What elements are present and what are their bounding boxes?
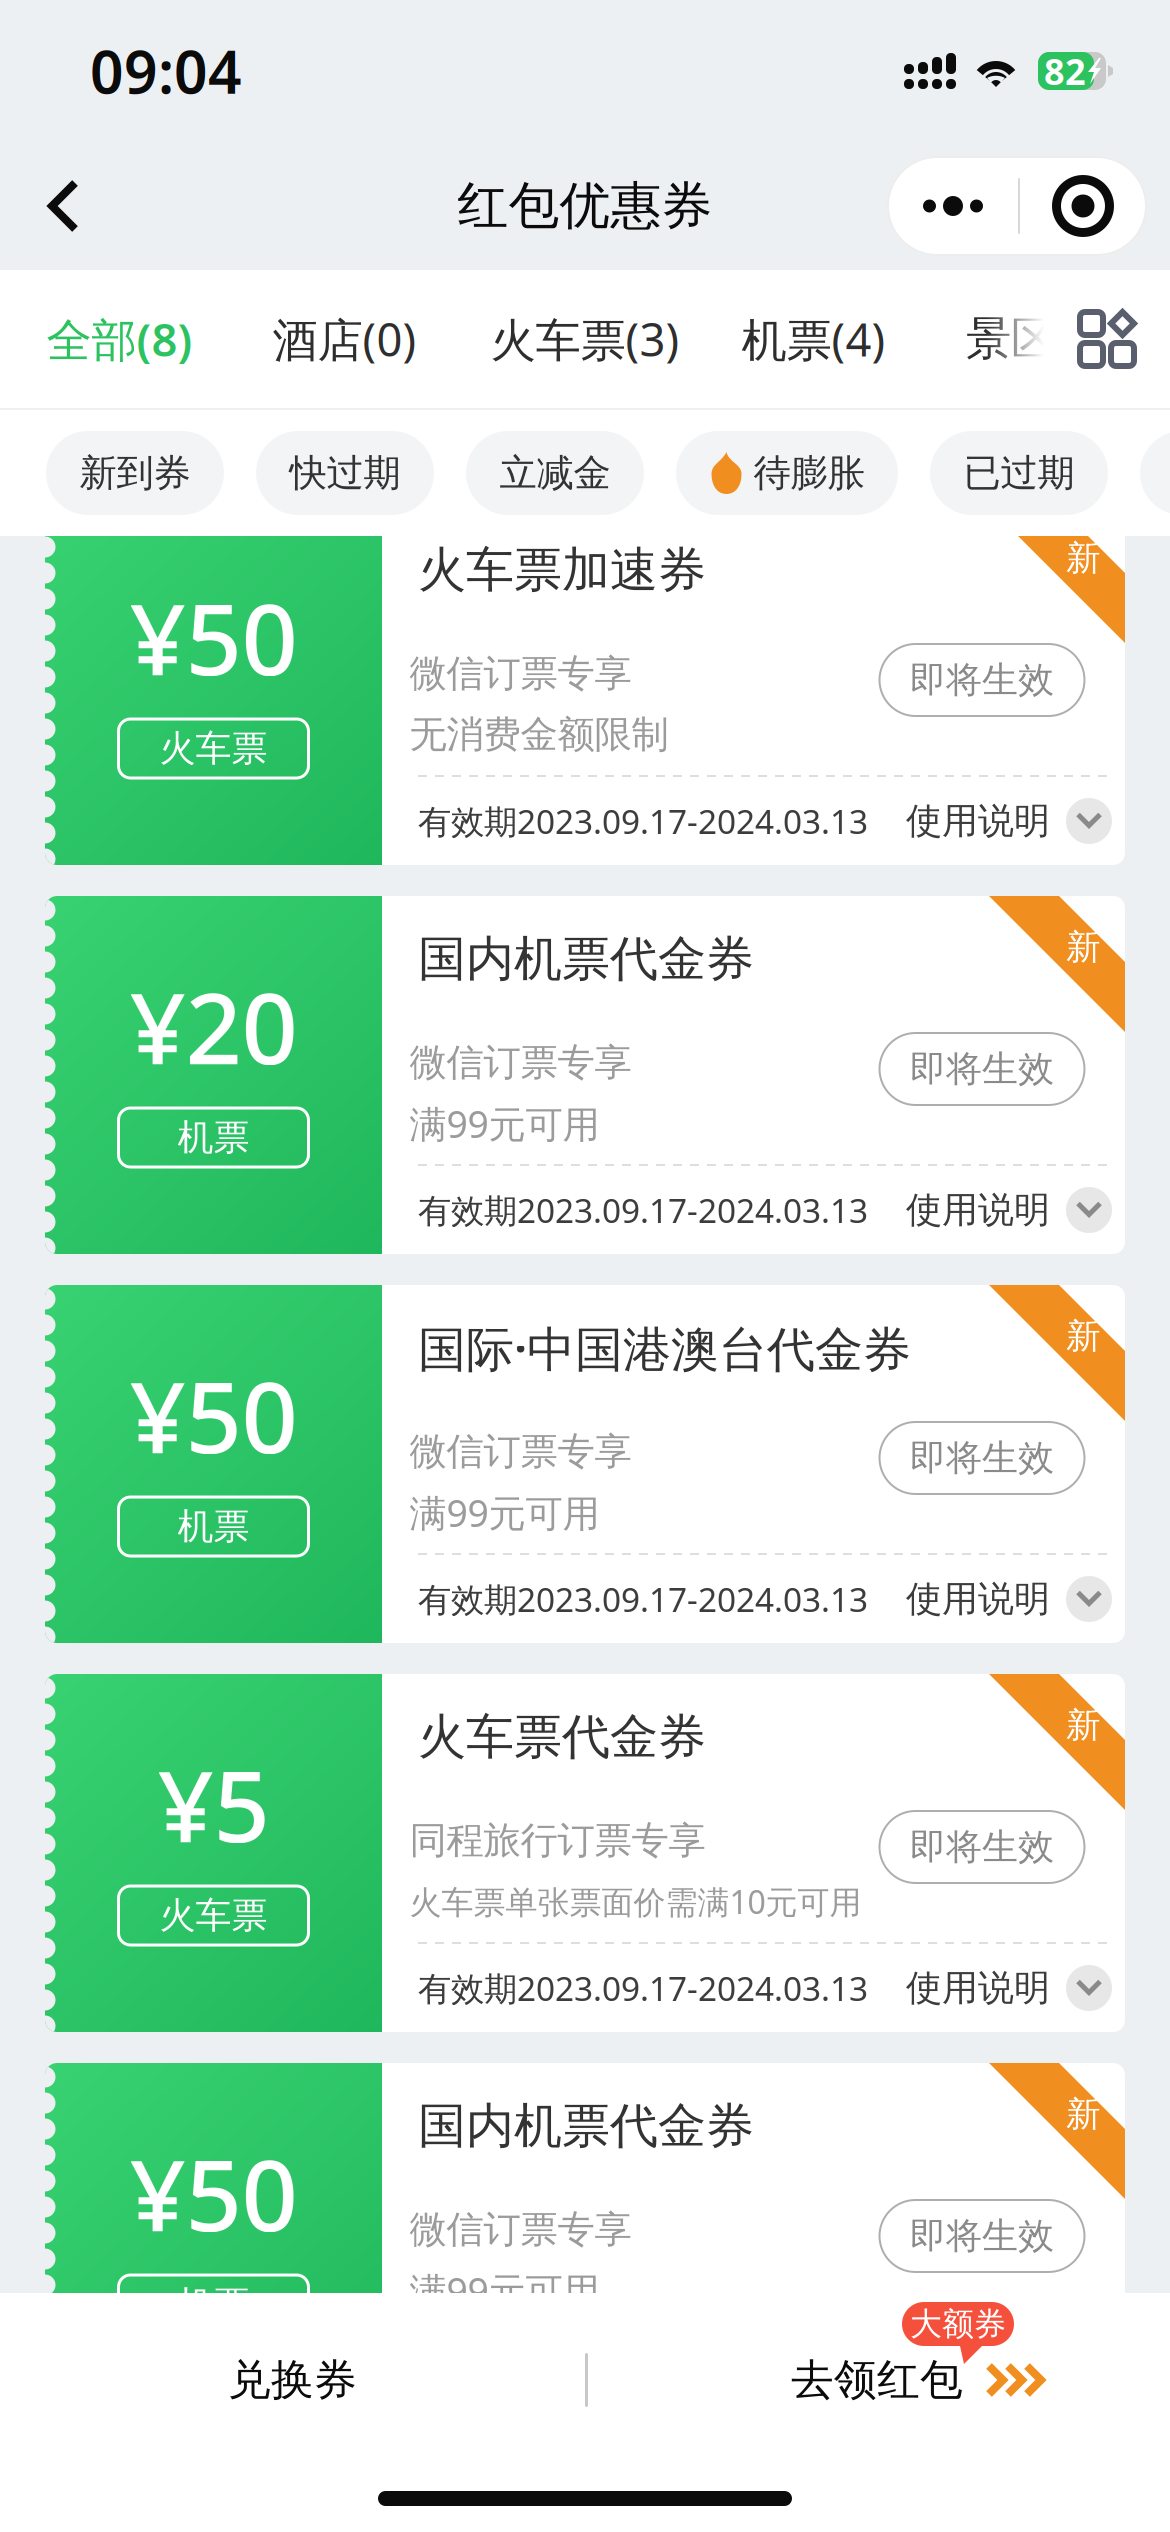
- staticText: 即将生效: [910, 1825, 1054, 1869]
- button[interactable]: 已使用: [1140, 431, 1170, 515]
- button[interactable]: 景区: [951, 270, 1071, 408]
- button[interactable]: 已过期: [930, 431, 1108, 515]
- staticText: 即将生效: [910, 658, 1054, 702]
- button[interactable]: More: [888, 157, 1018, 255]
- button[interactable]: 去领红包: [588, 2293, 1170, 2467]
- staticText: 已过期: [963, 450, 1074, 496]
- button[interactable]: 待膨胀: [676, 431, 898, 515]
- staticText: 微信订票专享: [409, 2207, 631, 2252]
- button[interactable]: All categories: [1044, 270, 1170, 408]
- button[interactable]: 快过期: [256, 431, 434, 515]
- staticText: 使用说明: [906, 1188, 1050, 1232]
- staticText: 微信订票专享: [409, 1429, 631, 1474]
- staticText: 有效期2023.09.17-2024.03.13: [418, 2355, 868, 2399]
- staticText: ¥20: [129, 960, 297, 1091]
- staticText: 满99元可用: [409, 1488, 599, 1537]
- button[interactable]: 火车票(3): [490, 270, 680, 408]
- staticText: 09:04: [90, 32, 242, 110]
- staticText: 火车票代金券: [418, 1707, 706, 1766]
- button[interactable]: Close mini program: [1020, 157, 1146, 255]
- staticText: 新: [1066, 1704, 1101, 1747]
- staticText: 新: [1066, 926, 1101, 969]
- staticText: 全部(8): [46, 309, 192, 369]
- staticText: 酒店(0): [272, 309, 416, 369]
- staticText: 机票: [177, 2282, 249, 2327]
- staticText: 82: [1044, 47, 1086, 95]
- staticText: 火车票单张票面价需满10元可用: [409, 1880, 861, 1923]
- button[interactable]: ¥50: [45, 1285, 1125, 1643]
- staticText: 新: [1066, 537, 1101, 580]
- staticText: 国内机票代金券: [418, 929, 754, 988]
- staticText: 满99元可用: [409, 1099, 599, 1148]
- staticText: 有效期2023.09.17-2024.03.13: [418, 1577, 868, 1621]
- staticText: 即将生效: [910, 1047, 1054, 1091]
- staticText: 火车票: [159, 726, 267, 771]
- button[interactable]: 兑换券: [0, 2293, 585, 2467]
- staticText: 有效期2023.09.17-2024.03.13: [418, 799, 868, 843]
- staticText: 即将生效: [910, 1436, 1054, 1480]
- staticText: 立减金: [499, 450, 610, 496]
- staticText: 有效期2023.09.17-2024.03.13: [418, 1188, 868, 1232]
- staticText: 微信订票专享: [409, 1040, 631, 1085]
- staticText: ¥50: [129, 1349, 297, 1480]
- staticText: 使用说明: [906, 1966, 1050, 2010]
- staticText: 使用说明: [906, 2355, 1050, 2399]
- staticText: 新: [1066, 2093, 1101, 2136]
- staticText: 同程旅行订票专享: [409, 1818, 705, 1863]
- staticText: 无消费金额限制: [409, 712, 668, 757]
- staticText: ¥5: [157, 1738, 269, 1869]
- staticText: 景区: [966, 311, 1056, 367]
- staticText: 国内机票代金券: [418, 2096, 754, 2155]
- staticText: 火车票: [159, 1893, 267, 1938]
- button[interactable]: 机票(4): [736, 270, 891, 408]
- button[interactable]: ¥50: [45, 2063, 1125, 2421]
- button[interactable]: ¥20: [45, 896, 1125, 1254]
- staticText: 机票(4): [741, 309, 885, 369]
- staticText: 火车票(3): [490, 309, 679, 369]
- staticText: ¥50: [129, 2127, 297, 2258]
- button[interactable]: 全部(8): [42, 270, 197, 408]
- button[interactable]: 新到券: [46, 431, 224, 515]
- staticText: 大额券: [910, 2304, 1006, 2344]
- staticText: 使用说明: [906, 1577, 1050, 1621]
- staticText: 机票: [177, 1115, 249, 1160]
- button[interactable]: 立减金: [466, 431, 644, 515]
- staticText: 快过期: [289, 450, 400, 496]
- staticText: 即将生效: [910, 2214, 1054, 2258]
- staticText: ¥50: [129, 571, 297, 702]
- button[interactable]: Back: [0, 142, 119, 270]
- button[interactable]: ¥50: [45, 507, 1125, 865]
- staticText: 有效期2023.09.17-2024.03.13: [418, 1966, 868, 2010]
- button[interactable]: 酒店(0): [267, 270, 422, 408]
- staticText: 国内机票代金券: [418, 2485, 754, 2532]
- staticText: 机票: [177, 1504, 249, 1549]
- staticText: 使用说明: [906, 799, 1050, 843]
- staticText: 新到券: [79, 450, 190, 496]
- staticText: 微信订票专享: [409, 651, 631, 696]
- staticText: 红包优惠券: [457, 175, 712, 237]
- staticText: 待膨胀: [753, 450, 864, 496]
- staticText: 国际·中国港澳台代金券: [418, 1316, 911, 1380]
- staticText: 新: [1066, 1315, 1101, 1358]
- staticText: 去领红包: [791, 2354, 963, 2406]
- staticText: 满99元可用: [409, 2266, 599, 2315]
- button[interactable]: ¥5: [45, 1674, 1125, 2032]
- staticText: 火车票加速券: [418, 540, 706, 599]
- staticText: 兑换券: [228, 2354, 357, 2406]
- button[interactable]: ¥20: [45, 2452, 1125, 2532]
